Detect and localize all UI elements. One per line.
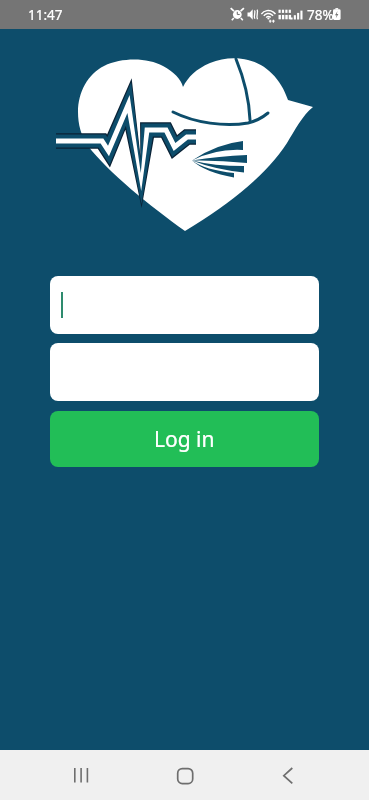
button[interactable]: Back: [265, 750, 311, 800]
staticText: 78%: [307, 6, 334, 24]
button[interactable]: [50, 343, 319, 401]
staticText: Log in: [154, 425, 215, 454]
button[interactable]: [50, 276, 319, 334]
button[interactable]: Home: [162, 750, 208, 800]
button[interactable]: Recent apps: [59, 750, 105, 800]
button[interactable]: Log in: [50, 411, 319, 467]
staticText: 11:47: [28, 6, 63, 24]
